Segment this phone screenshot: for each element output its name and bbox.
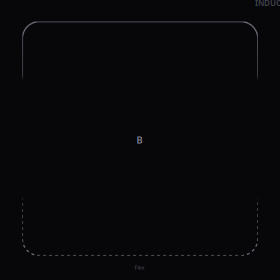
staticText: B	[136, 134, 142, 146]
staticText: Flex	[134, 264, 144, 271]
staticText: INDUCTION	[255, 0, 280, 8]
